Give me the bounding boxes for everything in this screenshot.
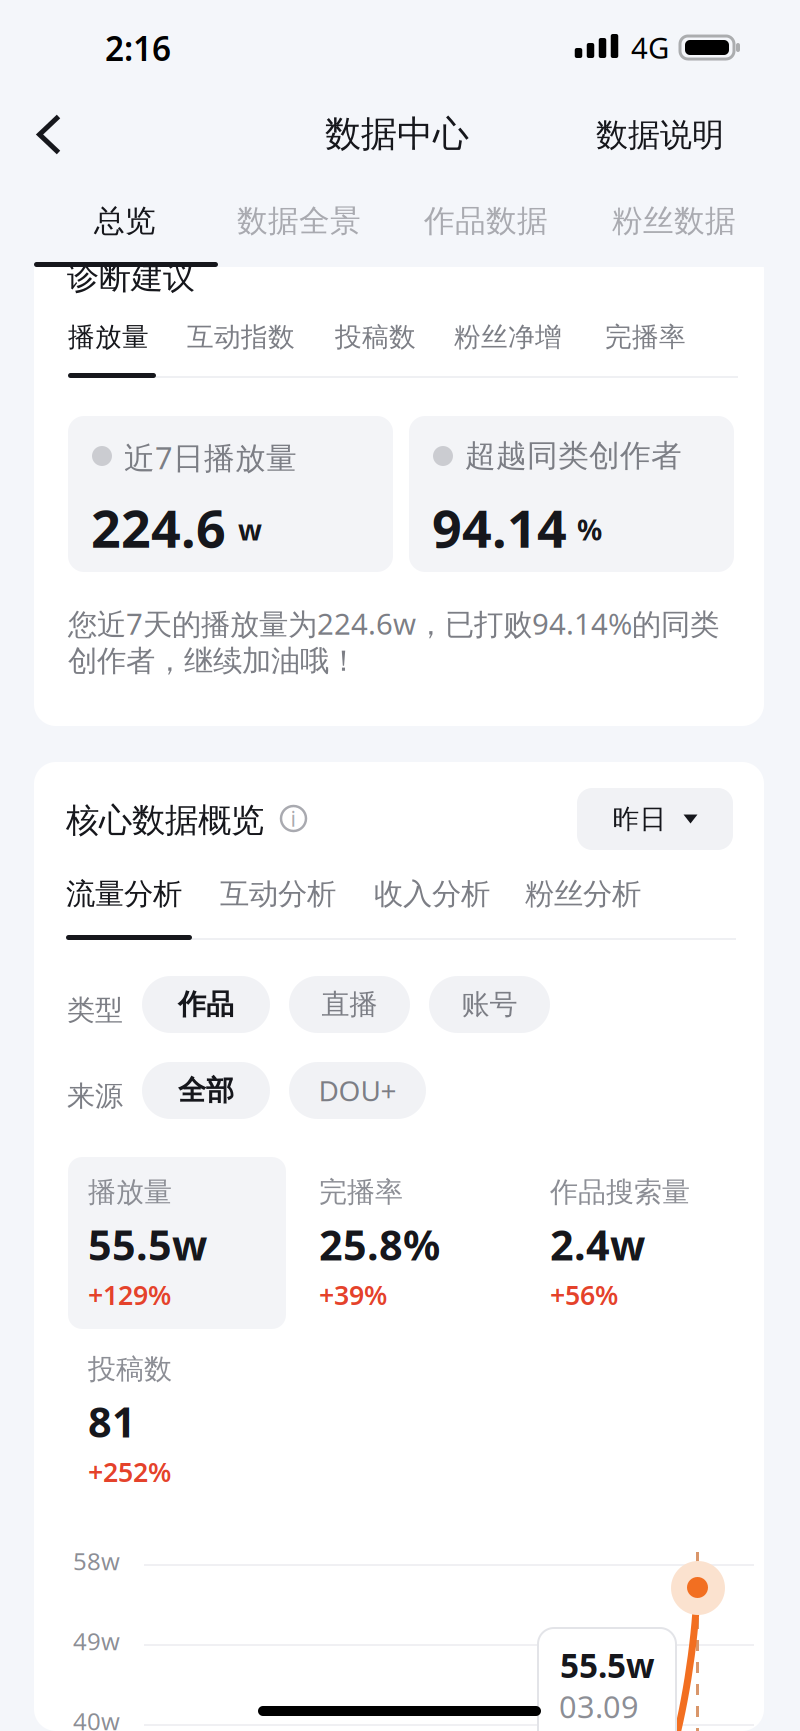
staticText: 81 [88,1394,136,1449]
staticText: 55.5w [560,1643,655,1687]
button[interactable]: 粉丝数据 [600,189,748,253]
staticText: 昨日 [612,803,666,835]
staticText: 收入分析 [374,876,490,912]
staticText: +129% [88,1277,171,1312]
staticText: 03.09 [559,1686,639,1727]
staticText: 94.14 [432,493,567,562]
staticText: 近7日播放量 [124,437,297,478]
button[interactable]: 返回 [14,92,88,176]
staticText: +252% [88,1454,171,1489]
staticText: 58w [73,1545,120,1577]
staticText: 粉丝数据 [612,202,736,240]
button[interactable]: 完播率 [596,308,695,366]
button[interactable]: 投稿数 [326,308,425,366]
button[interactable]: DOU+ [289,1062,426,1119]
staticText: 投稿数 [335,321,416,353]
staticText: 55.5w [88,1217,207,1272]
staticText: 全部 [178,1073,234,1108]
button[interactable]: 账号 [429,976,550,1033]
button[interactable]: 流量分析 [56,864,192,924]
staticText: 流量分析 [66,876,182,912]
staticText: 40w [73,1705,120,1731]
staticText: 投稿数 [88,1352,172,1386]
staticText: 49w [73,1625,120,1657]
staticText: 互动分析 [220,876,336,912]
button[interactable]: 播放量 [59,308,158,366]
staticText: 224.6 [91,493,226,562]
staticText: i [290,804,296,833]
button[interactable]: 总览 [82,189,168,253]
staticText: 总览 [94,202,156,240]
button[interactable]: 数据全景 [225,189,373,253]
staticText: 完播率 [319,1175,403,1209]
staticText: 作品数据 [424,202,548,240]
staticText: 来源 [67,1079,123,1113]
staticText: 完播率 [605,321,686,353]
staticText: 粉丝净增 [454,321,562,353]
staticText: 账号 [461,987,517,1022]
staticText: 超越同类创作者 [465,437,682,475]
staticText: DOU+ [318,1072,396,1109]
staticText: +39% [319,1277,387,1312]
staticText: 播放量 [68,321,149,353]
button[interactable]: 直播 [289,976,410,1033]
staticText: 类型 [67,993,123,1027]
staticText: 2.4w [550,1217,645,1272]
staticText: 作品搜索量 [550,1175,690,1209]
staticText: 播放量 [88,1175,172,1209]
staticText: 粉丝分析 [525,876,641,912]
staticText: 数据说明 [596,115,724,155]
staticText: 直播 [321,987,377,1022]
staticText: 互动指数 [187,321,295,353]
button[interactable]: 全部 [142,1062,270,1119]
staticText: 核心数据概览 [66,800,264,841]
staticText: 作品 [178,987,234,1022]
button[interactable]: 数据说明 [580,104,740,166]
staticText: w [238,511,262,548]
staticText: 数据中心 [325,112,469,156]
button[interactable]: 昨日 [577,788,733,850]
staticText: 诊断建议 [67,258,195,297]
button[interactable]: 粉丝分析 [515,864,651,924]
staticText: 2:16 [105,26,171,70]
staticText: % [577,511,602,548]
staticText: +56% [550,1277,618,1312]
staticText: 数据全景 [237,202,361,240]
staticText: 4G [631,28,669,67]
button[interactable]: 收入分析 [364,864,500,924]
button[interactable]: 粉丝净增 [445,308,571,366]
staticText: 25.8% [319,1217,440,1272]
button[interactable]: 作品数据 [412,189,560,253]
button[interactable]: 互动指数 [178,308,304,366]
button[interactable]: 作品 [142,976,270,1033]
button[interactable]: 互动分析 [210,864,346,924]
staticText: 您近7天的播放量为224.6w，已打败94.14%的同类 创作者，继续加油哦！ [68,604,719,679]
